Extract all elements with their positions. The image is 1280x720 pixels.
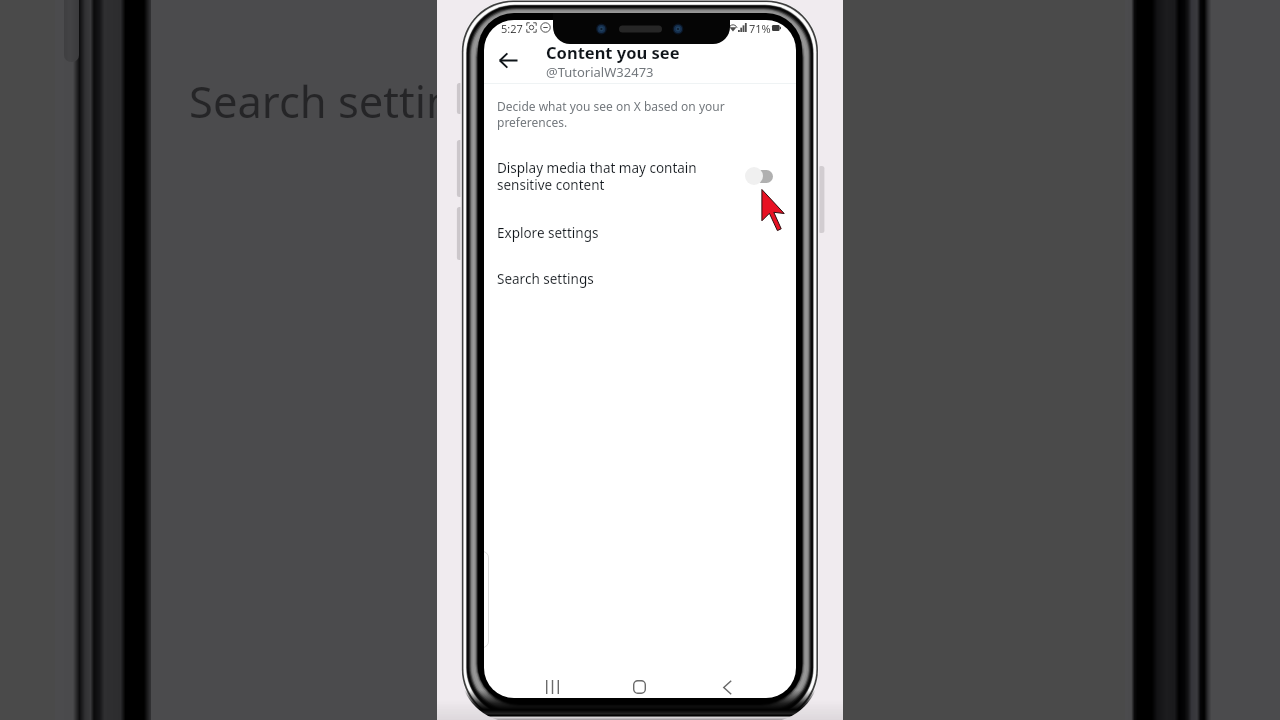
- button[interactable]: Home: [621, 669, 657, 698]
- staticText: 5:27: [501, 21, 523, 36]
- button[interactable]: Back: [491, 43, 525, 77]
- staticText: @TutorialW32473: [546, 63, 654, 81]
- staticText: Display media that may contain sensitive…: [497, 159, 697, 194]
- staticText: 71%: [749, 21, 771, 36]
- staticText: Search settings: [497, 270, 594, 288]
- button[interactable]: Recent apps: [534, 669, 570, 698]
- staticText: Content you see: [546, 41, 680, 63]
- button[interactable]: Display media that may contain sensitive…: [484, 154, 796, 198]
- button[interactable]: Search settings: [484, 266, 796, 294]
- staticText: Explore settings: [497, 224, 599, 242]
- button[interactable]: Explore settings: [484, 220, 796, 248]
- staticText: Decide what you see on X based on your p…: [497, 98, 727, 130]
- button[interactable]: Back: [709, 669, 745, 698]
- staticText: Search settings: [189, 71, 501, 130]
